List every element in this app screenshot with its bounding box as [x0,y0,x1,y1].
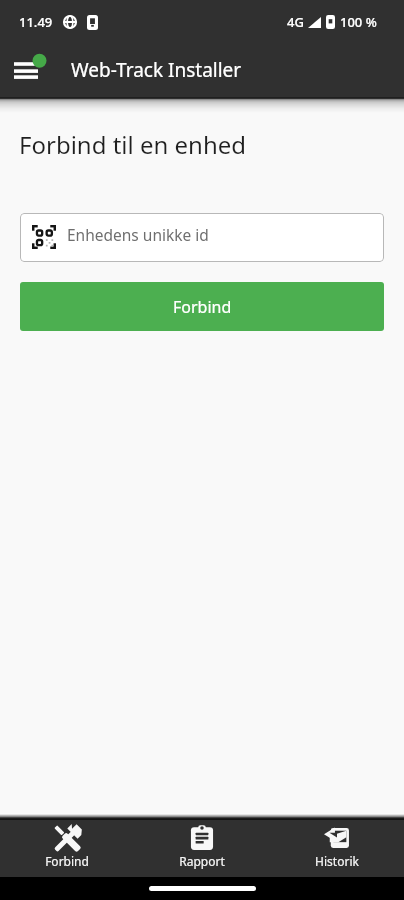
button[interactable]: Enhedens unikke id [20,213,384,262]
button[interactable]: Historik [269,820,404,877]
staticText: Rapport [179,853,225,869]
staticText: Web-Track Installer [71,57,242,83]
button[interactable]: Forbind [20,282,384,331]
staticText: Enhedens unikke id [67,224,209,245]
staticText: Forbind [45,853,89,869]
staticText: Forbind [173,296,232,318]
staticText: Forbind til en enhed [19,128,247,161]
button[interactable]: Rapport [134,820,269,877]
button[interactable]: Menu [2,47,50,95]
staticText: 4G [287,13,304,31]
staticText: 100 % [340,13,377,31]
button[interactable]: Forbind [0,820,134,877]
staticText: Historik [315,853,359,869]
staticText: 11.49 [19,13,53,31]
